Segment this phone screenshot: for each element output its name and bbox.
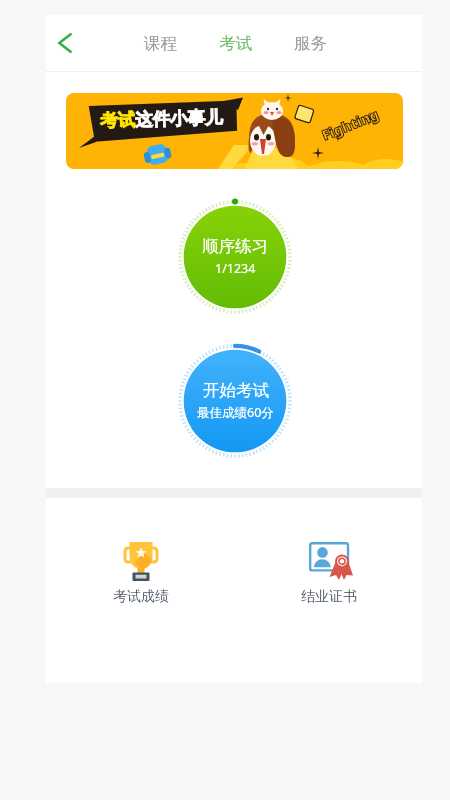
button[interactable]: Back [46, 24, 84, 62]
button[interactable]: 考试成绩 [96, 540, 186, 606]
button[interactable]: 结业证书 [284, 540, 374, 606]
staticText: 1/1234 [215, 260, 256, 277]
button[interactable]: 考试 [209, 26, 261, 60]
staticText: 考试 [219, 33, 252, 54]
button[interactable]: 开始考试 [173, 339, 297, 463]
staticText: 结业证书 [301, 588, 357, 606]
staticText: 开始考试 [203, 380, 269, 401]
staticText: 服务 [294, 33, 327, 54]
staticText: Fighting [319, 104, 381, 144]
button[interactable]: 考试 [66, 93, 403, 169]
button[interactable]: 服务 [284, 26, 336, 60]
staticText: 顺序练习 [202, 236, 268, 257]
staticText: 考试 [100, 109, 135, 132]
staticText: Fighting [319, 104, 381, 144]
staticText: 考试成绩 [113, 588, 169, 606]
staticText: 最佳成绩60分 [197, 404, 274, 421]
button[interactable]: 课程 [134, 26, 186, 60]
button[interactable]: 顺序练习 [173, 195, 297, 319]
staticText: 课程 [144, 33, 177, 54]
staticText: 这件小事儿 [135, 106, 223, 131]
